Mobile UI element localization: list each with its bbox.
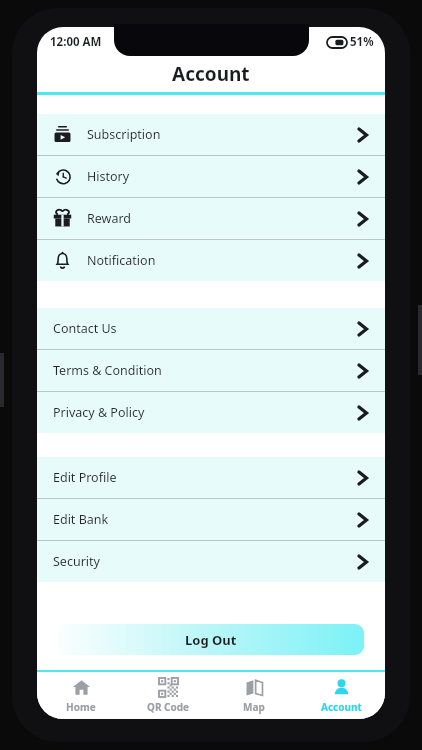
button[interactable]: Subscription (37, 114, 385, 155)
staticText: QR Code (147, 700, 190, 714)
button[interactable]: Security (37, 541, 385, 582)
staticText: Security (53, 553, 100, 570)
staticText: Edit Bank (53, 511, 109, 528)
staticText: Home (66, 700, 96, 714)
button[interactable]: Terms & Condition (37, 350, 385, 391)
staticText: Log Out (185, 631, 237, 649)
staticText: Account (321, 700, 362, 714)
staticText: Contact Us (53, 320, 117, 337)
staticText: 51% (350, 34, 374, 50)
button[interactable]: Edit Bank (37, 499, 385, 540)
staticText: Account (172, 61, 250, 87)
button[interactable]: QR Code (126, 675, 210, 717)
button[interactable]: Log Out (58, 624, 364, 655)
button[interactable]: Map (212, 675, 296, 717)
staticText: Edit Profile (53, 469, 117, 486)
button[interactable]: Privacy & Policy (37, 392, 385, 433)
staticText: Privacy & Policy (53, 404, 145, 421)
button[interactable]: History (37, 156, 385, 197)
staticText: Subscription (87, 126, 161, 143)
button[interactable]: Edit Profile (37, 457, 385, 498)
button[interactable]: Account (299, 675, 383, 717)
button[interactable]: Notification (37, 240, 385, 281)
staticText: Notification (87, 252, 156, 269)
staticText: Reward (87, 210, 132, 227)
staticText: Terms & Condition (53, 362, 162, 379)
button[interactable]: Contact Us (37, 308, 385, 349)
staticText: Map (243, 700, 265, 714)
button[interactable]: Home (39, 675, 123, 717)
button[interactable]: Reward (37, 198, 385, 239)
staticText: 12:00 AM (50, 34, 102, 50)
staticText: History (87, 168, 130, 185)
